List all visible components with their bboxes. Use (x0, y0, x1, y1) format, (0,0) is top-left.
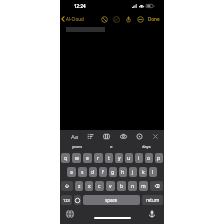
staticText: d (91, 169, 95, 176)
staticText: days (142, 144, 151, 149)
staticText: r (97, 155, 100, 162)
staticText: j (132, 169, 134, 176)
staticText: space (105, 197, 118, 203)
staticText: p (157, 155, 161, 162)
button[interactable]: p (155, 153, 163, 163)
staticText: h (121, 169, 125, 176)
button[interactable]: g (109, 167, 117, 177)
staticText: l (152, 169, 154, 176)
button[interactable]: Camera (118, 131, 129, 142)
staticText: s (81, 169, 84, 176)
button[interactable]: f (99, 167, 107, 177)
button[interactable]: space (83, 195, 140, 205)
staticText: t (108, 155, 110, 162)
button[interactable]: y (115, 153, 123, 163)
staticText: v (109, 183, 112, 190)
button[interactable]: l (149, 167, 157, 177)
button[interactable]: a (67, 167, 76, 177)
button[interactable]: c (95, 181, 104, 191)
button[interactable]: Done (147, 14, 161, 24)
button[interactable]: u (125, 153, 133, 163)
staticText: k (142, 169, 145, 176)
button[interactable]: Block (100, 15, 109, 24)
button[interactable]: x (85, 181, 93, 191)
staticText: x (88, 183, 91, 190)
button[interactable]: More (136, 15, 145, 24)
staticText: q (64, 155, 68, 162)
staticText: Al-Cloud (66, 16, 84, 22)
button[interactable]: m (139, 181, 148, 191)
staticText: z (78, 183, 81, 190)
button[interactable]: years (60, 142, 94, 151)
button[interactable]: Backspace (150, 181, 163, 191)
button[interactable]: e (83, 153, 92, 163)
button[interactable]: q (61, 153, 70, 163)
button[interactable]: 123 (61, 195, 72, 205)
button[interactable]: k (139, 167, 147, 177)
staticText: years (72, 144, 83, 149)
button[interactable]: v (106, 181, 115, 191)
button[interactable]: h (119, 167, 127, 177)
staticText: m (141, 183, 146, 190)
button[interactable]: o (145, 153, 153, 163)
staticText: 12:24 (74, 3, 86, 9)
button[interactable]: b (117, 181, 126, 191)
button[interactable]: Text format (69, 131, 80, 142)
staticText: Aa (71, 133, 79, 141)
button[interactable]: Table (101, 131, 112, 142)
button[interactable]: Checklist (85, 131, 96, 142)
staticText: u (127, 155, 131, 162)
button[interactable]: Checked (112, 15, 121, 24)
staticText: return (146, 197, 160, 203)
staticText: 123 (63, 198, 70, 203)
staticText: n (131, 183, 135, 190)
staticText: a (70, 169, 73, 176)
button[interactable]: Dictation (148, 210, 156, 218)
button[interactable]: i (135, 153, 143, 163)
staticText: o (147, 155, 151, 162)
staticText: f (102, 169, 104, 176)
staticText: Done (148, 16, 160, 22)
button[interactable]: r (94, 153, 103, 163)
button[interactable]: d (89, 167, 97, 177)
staticText: c (98, 183, 101, 190)
button[interactable]: Emoji (74, 195, 81, 205)
staticText: y (118, 155, 121, 162)
staticText: w (75, 155, 79, 162)
button[interactable]: t (105, 153, 113, 163)
staticText: e (86, 155, 89, 162)
staticText: o (110, 144, 113, 149)
button[interactable]: o (94, 142, 129, 151)
button[interactable]: Switch keyboard (66, 210, 74, 218)
button[interactable]: j (129, 167, 137, 177)
staticText: g (111, 169, 115, 176)
button[interactable]: w (72, 153, 81, 163)
button[interactable]: Al-Cloud (60, 14, 86, 24)
button[interactable]: z (75, 181, 83, 191)
button[interactable]: Shift (61, 181, 73, 191)
button[interactable]: Close (150, 131, 161, 142)
button[interactable]: s (78, 167, 87, 177)
button[interactable]: n (128, 181, 137, 191)
button[interactable]: days (129, 142, 164, 151)
button[interactable]: return (142, 195, 163, 205)
button[interactable]: Markup (134, 131, 145, 142)
staticText: b (120, 183, 124, 190)
button[interactable]: Share (124, 15, 133, 24)
staticText: i (138, 155, 140, 162)
